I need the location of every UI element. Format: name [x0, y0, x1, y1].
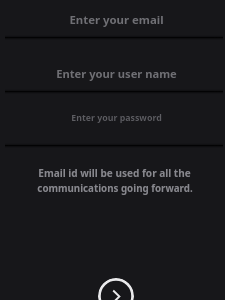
staticText: Email id will be used for all the — [38, 166, 191, 180]
staticText: Enter your password — [71, 112, 162, 124]
staticText: Enter your email — [69, 12, 164, 28]
button[interactable]: Next — [98, 278, 134, 300]
button[interactable]: Enter your email — [0, 0, 225, 37]
staticText: communications going forward. — [37, 182, 193, 195]
staticText: Enter your user name — [56, 66, 177, 81]
button[interactable]: Enter your user name — [0, 38, 225, 91]
button[interactable]: Enter your password — [0, 92, 225, 145]
